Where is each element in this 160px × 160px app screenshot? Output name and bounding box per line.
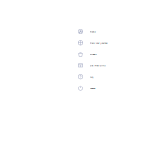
button[interactable]: Get Free Gifts [78,63,105,68]
staticText: Logout [89,86,95,90]
button[interactable]: Orders [78,52,96,57]
button[interactable]: Logout [78,85,95,90]
staticText: Get Free Gifts [89,64,105,67]
staticText: FAQ [89,75,93,78]
button[interactable]: Track Your Journey [78,40,107,45]
button[interactable]: Profile [78,29,95,34]
staticText: Orders [89,52,96,56]
staticText: Track Your Journey [89,41,107,44]
staticText: Profile [89,30,95,33]
button[interactable]: FAQ [78,74,93,79]
